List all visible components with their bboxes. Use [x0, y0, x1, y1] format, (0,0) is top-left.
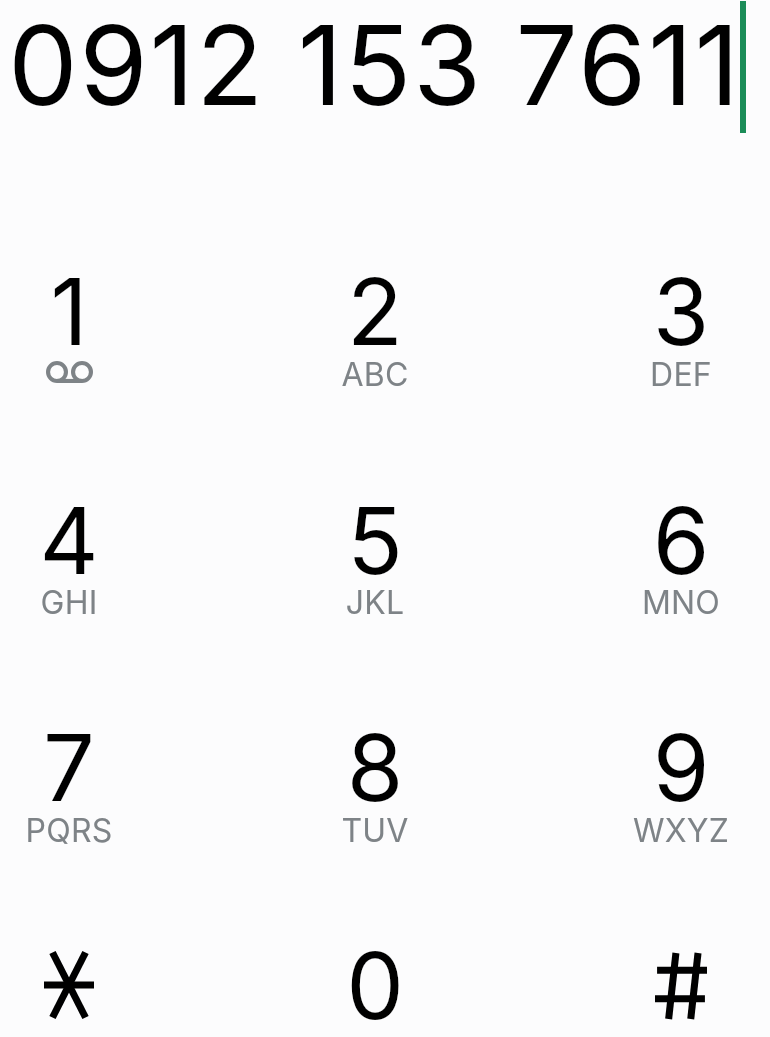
button[interactable]: Dial 4 [0, 458, 189, 672]
staticText: DEF [601, 355, 761, 400]
button[interactable]: Dial 9 [561, 685, 770, 899]
staticText: 1 [9, 256, 129, 386]
staticText: 9 [621, 712, 741, 842]
staticText: 7 [9, 712, 129, 842]
staticText: 5 [315, 485, 435, 615]
button[interactable]: Phone number 0912 153 7611 [4, 0, 766, 140]
staticText: WXYZ [601, 811, 761, 856]
button[interactable]: Dial star [0, 903, 189, 1037]
staticText: 0912 153 7611 [8, 0, 742, 132]
button[interactable]: Dial 8 [255, 685, 495, 899]
staticText: 8 [315, 712, 435, 842]
button[interactable]: Dial 0 [255, 903, 495, 1037]
staticText: 0 [315, 930, 435, 1037]
staticText: JKL [295, 583, 455, 628]
staticText: PQRS [0, 811, 149, 856]
button[interactable]: Dial 5 [255, 458, 495, 672]
staticText: GHI [0, 583, 149, 628]
staticText: TUV [295, 811, 455, 856]
button[interactable]: Dial 6 [561, 458, 770, 672]
button[interactable]: Dial 1 [0, 229, 189, 443]
staticText: 3 [621, 256, 741, 386]
button[interactable]: Dial 3 [561, 229, 770, 443]
staticText: ABC [295, 355, 455, 400]
staticText: 4 [9, 485, 129, 615]
staticText: MNO [601, 583, 761, 628]
button[interactable]: Dial pound [561, 903, 770, 1037]
staticText: 6 [621, 485, 741, 615]
other: Voicemail [46, 361, 93, 383]
button[interactable]: Dial 2 [255, 229, 495, 443]
staticText: 2 [315, 256, 435, 386]
button[interactable]: Dial 7 [0, 685, 189, 899]
